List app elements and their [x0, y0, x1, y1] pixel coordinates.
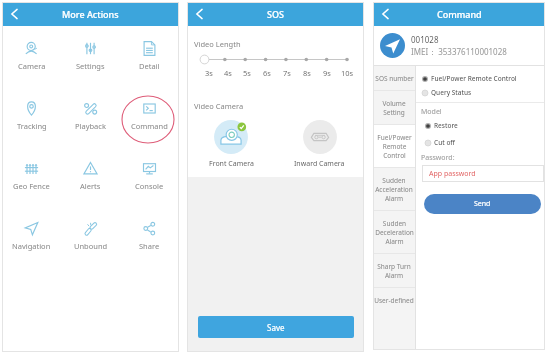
- button[interactable]: Sudden Acceleration Alarm: [373, 168, 415, 210]
- staticText: Volume Setting: [382, 99, 406, 117]
- button[interactable]: Back: [187, 2, 211, 26]
- button[interactable]: Fuel/Power Remote Control: [422, 74, 517, 83]
- button[interactable]: Navigation: [2, 206, 61, 266]
- staticText: Fuel/Power Remote Control: [377, 133, 412, 160]
- staticText: IMEI： 353376110001028: [411, 46, 507, 57]
- staticText: Password:: [421, 153, 455, 163]
- staticText: Tracking: [17, 121, 47, 131]
- button[interactable]: Cut off: [425, 138, 455, 147]
- staticText: 10s: [341, 68, 354, 78]
- staticText: 9s: [323, 68, 331, 78]
- staticText: SOS number: [375, 74, 414, 83]
- staticText: App password: [429, 169, 476, 179]
- staticText: Front Camera: [209, 159, 254, 169]
- button[interactable]: SOS number: [373, 66, 415, 90]
- staticText: Share: [139, 241, 160, 251]
- staticText: Detail: [139, 61, 160, 71]
- button[interactable]: Console: [120, 146, 179, 206]
- button[interactable]: Query Status: [422, 88, 472, 97]
- staticText: Restore: [434, 121, 458, 130]
- staticText: User-defined: [374, 296, 414, 305]
- staticText: Send: [474, 199, 491, 209]
- staticText: 001028: [411, 34, 439, 45]
- button[interactable]: Back: [373, 2, 397, 26]
- staticText: Sharp Turn Alarm: [377, 262, 411, 280]
- staticText: Video Length: [194, 39, 241, 49]
- button[interactable]: Send: [424, 194, 541, 214]
- staticText: 5s: [243, 68, 251, 78]
- button[interactable]: Camera: [2, 26, 61, 86]
- staticText: Video Camera: [194, 101, 244, 111]
- staticText: Settings: [76, 61, 105, 71]
- button[interactable]: Tracking: [2, 86, 61, 146]
- staticText: Save: [267, 322, 285, 333]
- staticText: Inward Camera: [294, 159, 345, 169]
- staticText: Command: [131, 121, 168, 131]
- staticText: 8s: [303, 68, 311, 78]
- button[interactable]: Share: [120, 206, 179, 266]
- staticText: Playback: [75, 121, 106, 131]
- staticText: Model: [421, 107, 442, 117]
- staticText: Camera: [18, 61, 46, 71]
- staticText: Fuel/Power Remote Control: [431, 74, 517, 83]
- staticText: Console: [135, 181, 164, 191]
- button[interactable]: Sudden Deceleration Alarm: [373, 211, 415, 253]
- button[interactable]: App password: [429, 165, 544, 182]
- staticText: Alerts: [80, 181, 101, 191]
- button[interactable]: Playback: [61, 86, 120, 146]
- staticText: Sudden Deceleration Alarm: [375, 219, 414, 246]
- button[interactable]: Alerts: [61, 146, 120, 206]
- button[interactable]: Command: [120, 86, 179, 146]
- staticText: SOS: [267, 8, 284, 20]
- button[interactable]: Volume Setting: [373, 91, 415, 124]
- button[interactable]: Restore: [425, 121, 458, 130]
- button[interactable]: Front Camera: [187, 119, 275, 169]
- button[interactable]: Save: [198, 316, 354, 338]
- staticText: Query Status: [431, 88, 472, 97]
- staticText: 4s: [224, 68, 232, 78]
- staticText: 6s: [263, 68, 271, 78]
- staticText: Command: [437, 8, 482, 20]
- button[interactable]: Fuel/Power Remote Control: [373, 125, 415, 167]
- button[interactable]: Unbound: [61, 206, 120, 266]
- staticText: Navigation: [12, 241, 51, 251]
- staticText: More Actions: [62, 8, 119, 20]
- button[interactable]: Detail: [120, 26, 179, 86]
- staticText: Sudden Acceleration Alarm: [375, 176, 413, 203]
- button[interactable]: Inward Camera: [275, 119, 364, 169]
- button[interactable]: Geo Fence: [2, 146, 61, 206]
- button[interactable]: Sharp Turn Alarm: [373, 254, 415, 287]
- button[interactable]: User-defined: [373, 288, 415, 312]
- button[interactable]: Settings: [61, 26, 120, 86]
- staticText: 3s: [205, 68, 213, 78]
- button[interactable]: Back: [2, 2, 26, 26]
- staticText: 7s: [283, 68, 291, 78]
- staticText: Cut off: [434, 138, 455, 147]
- staticText: Unbound: [74, 241, 108, 251]
- staticText: Geo Fence: [13, 181, 50, 191]
